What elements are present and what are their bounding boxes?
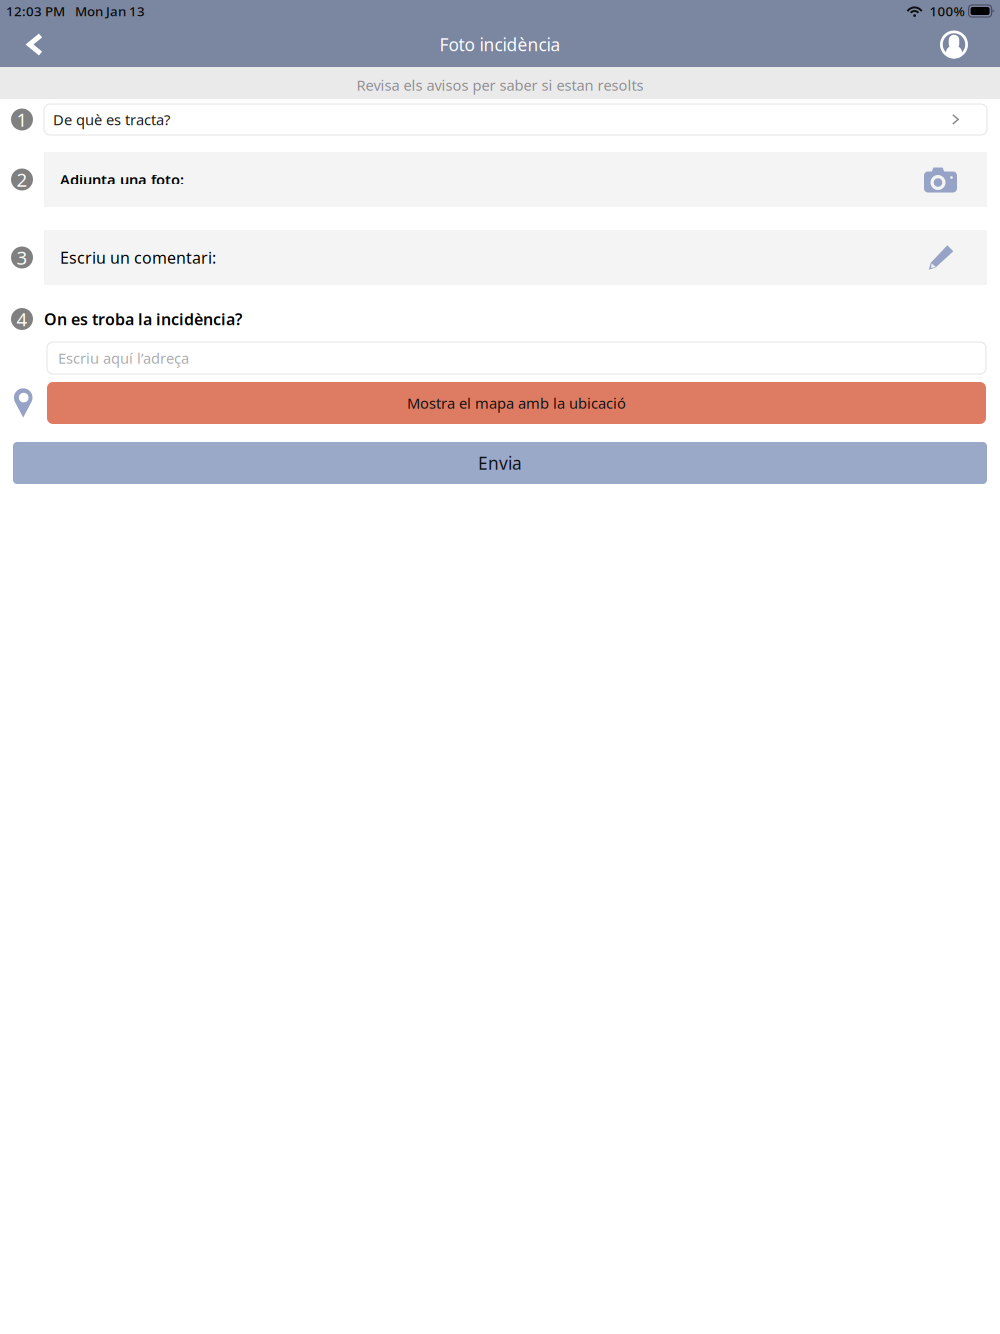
staticText: 3 xyxy=(16,245,27,270)
button[interactable]: Escriu aquí l’adreça xyxy=(47,342,986,374)
button[interactable]: De què es tracta? xyxy=(44,104,987,135)
button[interactable]: Adjunta una foto: xyxy=(44,152,987,207)
staticText: 12:03 PM xyxy=(6,2,65,20)
staticText: 2 xyxy=(16,167,27,192)
button[interactable]: Envia xyxy=(13,442,987,484)
staticText: De què es tracta? xyxy=(53,110,170,129)
staticText: Revisa els avisos per saber si estan res… xyxy=(356,75,643,95)
staticText: Escriu un comentari: xyxy=(60,247,216,268)
staticText: Escriu aquí l’adreça xyxy=(58,348,189,368)
staticText: Adjunta una foto: xyxy=(60,170,184,189)
staticText: On es troba la incidència? xyxy=(44,308,242,330)
button[interactable]: Account xyxy=(932,22,976,66)
staticText: Mostra el mapa amb la ubicació xyxy=(407,393,626,413)
staticText: 100% xyxy=(930,2,965,20)
button[interactable]: Mostra el mapa amb la ubicació xyxy=(47,382,986,424)
staticText: 4 xyxy=(16,307,27,331)
staticText: 1 xyxy=(16,107,27,132)
button[interactable]: Back xyxy=(13,22,57,66)
staticText: Mon Jan 13 xyxy=(75,2,145,20)
staticText: Foto incidència xyxy=(439,33,560,56)
button[interactable]: Escriu un comentari: xyxy=(44,230,987,285)
staticText: Envia xyxy=(478,451,522,474)
